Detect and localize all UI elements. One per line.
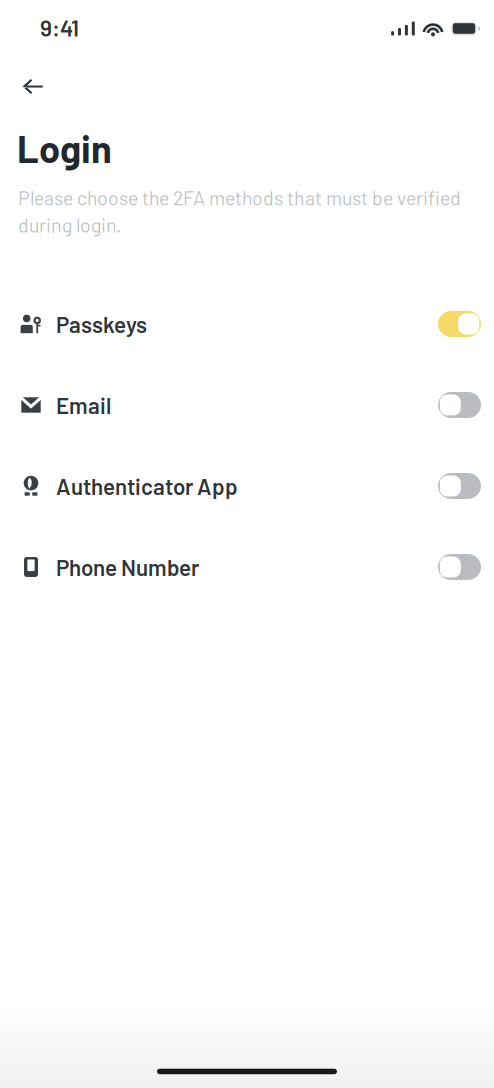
staticText: Email [56, 391, 111, 418]
button[interactable]: Authenticator App [0, 445, 494, 526]
staticText: Passkeys [56, 310, 147, 337]
staticText: Authenticator App [56, 472, 238, 499]
staticText: Phone Number [56, 553, 199, 580]
staticText: Login [17, 125, 112, 171]
button[interactable]: Passkeys [0, 283, 494, 364]
staticText: 9:41 [40, 14, 79, 41]
button[interactable]: Back [0, 66, 59, 107]
button[interactable]: Phone Number [0, 526, 494, 607]
staticText: Please choose the 2FA methods that must … [18, 186, 461, 236]
button[interactable]: Email [0, 364, 494, 445]
